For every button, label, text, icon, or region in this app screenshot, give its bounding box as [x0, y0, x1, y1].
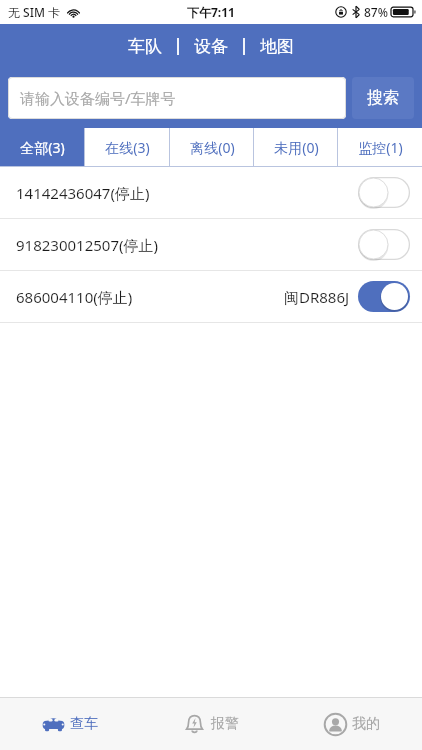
button[interactable]: 14142436047(停止): [0, 167, 422, 218]
button[interactable]: 918230012507(停止): [0, 219, 422, 270]
button[interactable]: 查车: [0, 698, 140, 750]
button[interactable]: 监控(1): [338, 128, 422, 166]
staticText: 全部(3): [20, 138, 65, 157]
staticText: 地图: [260, 36, 294, 57]
staticText: 无 SIM 卡: [8, 4, 61, 20]
staticText: 918230012507(停止): [16, 235, 158, 255]
staticText: 搜索: [367, 88, 399, 108]
staticText: 下午7:11: [187, 4, 235, 20]
staticText: 车队: [128, 36, 162, 57]
button[interactable]: Switch off: [358, 229, 410, 260]
button[interactable]: Switch on: [358, 281, 410, 312]
button[interactable]: 在线(3): [85, 128, 170, 166]
button[interactable]: 请输入设备编号/车牌号: [8, 77, 346, 119]
button[interactable]: 报警: [140, 698, 281, 750]
button[interactable]: 离线(0): [170, 128, 254, 166]
button[interactable]: 设备: [188, 32, 234, 61]
button[interactable]: 地图: [254, 32, 300, 61]
staticText: 查车: [70, 715, 98, 733]
staticText: 监控(1): [358, 138, 403, 157]
staticText: 14142436047(停止): [16, 183, 150, 203]
staticText: 报警: [211, 715, 239, 733]
staticText: 请输入设备编号/车牌号: [20, 88, 176, 108]
button[interactable]: 全部(3): [0, 128, 85, 166]
staticText: 设备: [194, 36, 228, 57]
button[interactable]: Switch off: [358, 177, 410, 208]
button[interactable]: 搜索: [352, 77, 414, 119]
staticText: 未用(0): [274, 138, 319, 157]
button[interactable]: 车队: [122, 32, 168, 61]
staticText: 87%: [364, 4, 388, 20]
button[interactable]: 未用(0): [254, 128, 338, 166]
staticText: 686004110(停止): [16, 287, 133, 307]
staticText: 离线(0): [190, 138, 235, 157]
button[interactable]: 686004110(停止): [0, 271, 422, 322]
staticText: 我的: [352, 715, 380, 733]
staticText: 在线(3): [105, 138, 150, 157]
staticText: 闽DR886J: [284, 287, 350, 307]
button[interactable]: 我的: [281, 698, 422, 750]
